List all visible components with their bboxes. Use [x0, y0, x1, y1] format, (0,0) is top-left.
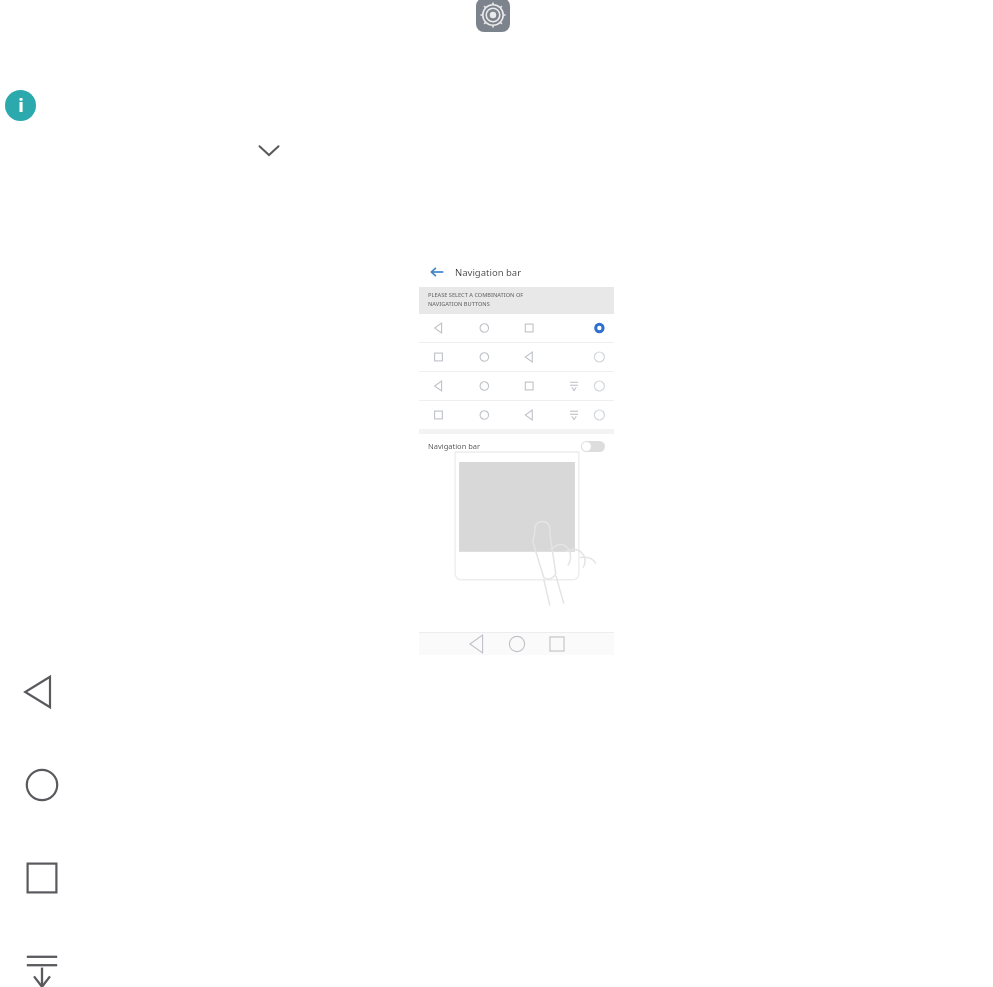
button[interactable]: Recents	[544, 633, 570, 655]
button[interactable]: Hide navigation bar	[22, 950, 62, 987]
staticText: NAVIGATION BUTTONS	[428, 300, 490, 308]
button[interactable]: Back	[464, 633, 490, 655]
button[interactable]: Back	[22, 672, 62, 712]
button[interactable]: Home	[504, 633, 530, 655]
button[interactable]: Recents	[22, 858, 62, 898]
button[interactable]: Navigation bar	[428, 434, 605, 458]
button[interactable]	[419, 314, 614, 342]
button[interactable]: Information	[5, 90, 36, 121]
button[interactable]: Expand	[252, 134, 286, 168]
staticText: PLEASE SELECT A COMBINATION OF	[428, 291, 524, 299]
button[interactable]: Navigation bar	[419, 257, 614, 287]
button[interactable]: Settings	[476, 0, 510, 32]
button[interactable]: Home	[22, 765, 62, 805]
button[interactable]	[419, 343, 614, 371]
staticText: Navigation bar	[455, 266, 522, 279]
staticText: Navigation bar	[428, 441, 481, 451]
staticText: i	[18, 94, 24, 117]
button[interactable]	[419, 372, 614, 400]
button[interactable]	[419, 401, 614, 429]
